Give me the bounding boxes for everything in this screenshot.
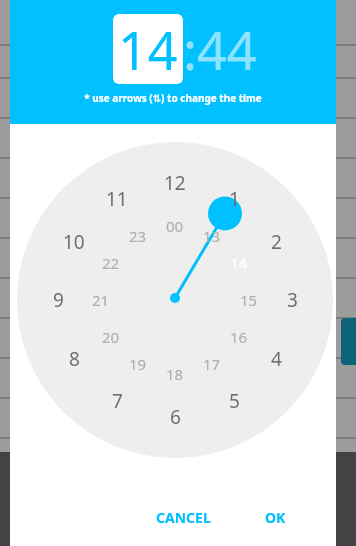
button[interactable]: 11: [101, 185, 133, 213]
button[interactable]: 19: [123, 351, 153, 377]
staticText: 12: [164, 170, 186, 196]
button[interactable]: 00: [160, 213, 190, 239]
button[interactable]: 7: [101, 387, 133, 415]
button[interactable]: 3: [276, 286, 308, 314]
staticText: 11: [106, 186, 128, 212]
button[interactable]: 2: [260, 228, 292, 256]
staticText: 4: [271, 346, 282, 372]
button[interactable]: 1: [218, 185, 250, 213]
staticText: 3: [287, 287, 298, 313]
staticText: 14: [230, 253, 248, 273]
button[interactable]: 8: [58, 345, 90, 373]
button[interactable]: 21: [86, 287, 116, 313]
button[interactable]: 14: [224, 250, 254, 276]
button[interactable]: 16: [224, 324, 254, 350]
staticText: 16: [230, 327, 248, 347]
staticText: :44: [183, 14, 257, 84]
button[interactable]: 4: [260, 345, 292, 373]
staticText: CANCEL: [156, 508, 211, 527]
staticText: 10: [63, 229, 85, 255]
button[interactable]: 14: [113, 14, 183, 84]
staticText: 20: [102, 327, 120, 347]
button[interactable]: 18: [160, 361, 190, 387]
staticText: 18: [166, 364, 184, 384]
staticText: * use arrows (⇅) to change the time: [84, 91, 262, 105]
staticText: 7: [112, 388, 123, 414]
staticText: 21: [92, 290, 110, 310]
staticText: 8: [69, 346, 80, 372]
staticText: 00: [166, 216, 184, 236]
staticText: 2: [271, 229, 282, 255]
staticText: 9: [53, 287, 64, 313]
button[interactable]: 10: [58, 228, 90, 256]
button[interactable]: 6: [159, 403, 191, 431]
button[interactable]: 15: [234, 287, 264, 313]
staticText: OK: [265, 508, 286, 527]
button[interactable]: 17: [197, 351, 227, 377]
staticText: 17: [203, 354, 221, 374]
button[interactable]: 5: [218, 387, 250, 415]
button[interactable]: 20: [96, 324, 126, 350]
staticText: 1: [229, 186, 240, 212]
button[interactable]: OK: [253, 500, 297, 534]
button[interactable]: :44: [183, 14, 263, 84]
button[interactable]: 9: [42, 286, 74, 314]
staticText: 23: [129, 226, 147, 246]
button[interactable]: 13: [197, 223, 227, 249]
staticText: 13: [203, 226, 221, 246]
staticText: 6: [170, 404, 181, 430]
staticText: 15: [240, 290, 258, 310]
button[interactable]: 22: [96, 250, 126, 276]
staticText: 14: [118, 14, 178, 84]
staticText: 19: [129, 354, 147, 374]
button[interactable]: 23: [123, 223, 153, 249]
button[interactable]: CANCEL: [143, 500, 223, 534]
staticText: 22: [102, 253, 120, 273]
button[interactable]: 12: [159, 169, 191, 197]
staticText: 5: [229, 388, 240, 414]
